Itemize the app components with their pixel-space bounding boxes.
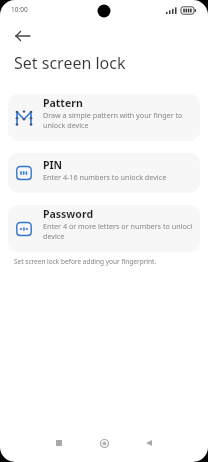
- staticText: Enter 4 or more letters or numbers to un…: [43, 221, 192, 241]
- button[interactable]: [134, 428, 164, 458]
- staticText: Set screen lock: [14, 52, 126, 74]
- button[interactable]: PIN: [8, 153, 200, 193]
- button[interactable]: Password: [8, 205, 200, 252]
- staticText: PIN: [43, 158, 63, 172]
- staticText: 10:00: [11, 5, 28, 14]
- staticText: Set screen lock before adding your finge…: [14, 257, 157, 266]
- staticText: Pattern: [43, 96, 83, 110]
- button[interactable]: Pattern: [8, 94, 200, 141]
- staticText: Enter 4-16 numbers to unlock device: [43, 172, 167, 182]
- button[interactable]: [89, 428, 119, 458]
- button[interactable]: [44, 428, 74, 458]
- staticText: Password: [43, 207, 94, 221]
- button[interactable]: [8, 27, 38, 45]
- staticText: Draw a simple pattern with your finger t…: [43, 110, 183, 130]
